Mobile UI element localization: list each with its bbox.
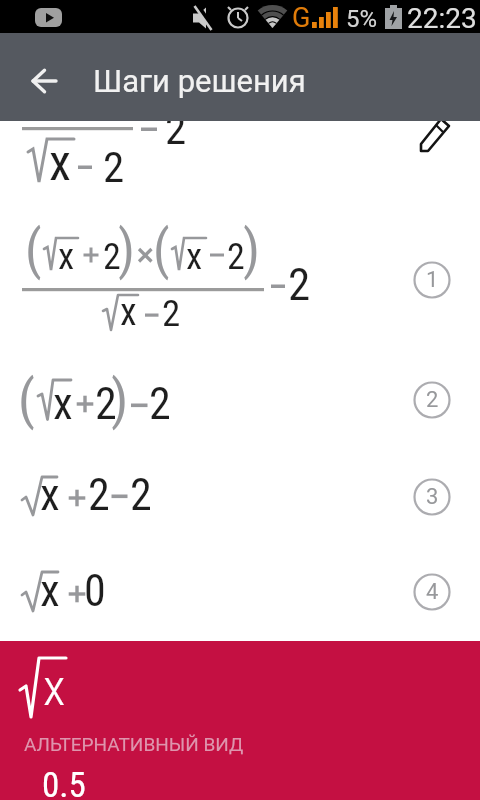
staticText: 2 [288, 258, 311, 311]
staticText: 0.5 [42, 765, 86, 800]
staticText: 3 [426, 484, 439, 510]
staticText: 2 [95, 378, 117, 430]
staticText: ( [25, 219, 42, 281]
staticText: 2 [88, 469, 110, 521]
staticText: ) [243, 219, 260, 281]
staticText: G [292, 2, 311, 34]
staticText: ( [18, 368, 35, 431]
button[interactable] [410, 570, 454, 614]
button[interactable] [408, 96, 456, 144]
button[interactable] [410, 378, 454, 422]
staticText: x [120, 290, 137, 335]
button[interactable] [16, 53, 72, 109]
button[interactable] [410, 475, 454, 519]
staticText: 2 [130, 469, 152, 521]
staticText: 22:23 [407, 2, 477, 35]
button[interactable] [0, 641, 480, 800]
staticText: x [40, 468, 60, 521]
staticText: 2 [149, 378, 171, 430]
staticText: 2 [103, 236, 121, 278]
staticText: x [186, 235, 203, 278]
staticText: Шаги решения [93, 63, 306, 99]
staticText: 5% [346, 5, 378, 33]
staticText: ) [118, 219, 135, 281]
staticText: x [58, 235, 75, 278]
staticText: ( [153, 219, 170, 281]
staticText: АЛЬТЕРНАТИВНЫЙ ВИД [24, 733, 244, 755]
staticText: 2 [103, 142, 125, 192]
staticText: ) [111, 368, 129, 431]
button[interactable] [410, 258, 454, 302]
staticText: 4 [426, 579, 439, 605]
staticText: 2 [426, 387, 439, 413]
staticText: 0 [84, 565, 106, 617]
staticText: x [43, 657, 66, 718]
staticText: x [40, 564, 60, 617]
staticText: 2 [162, 292, 181, 335]
staticText: x [53, 377, 73, 430]
staticText: 2 [227, 236, 245, 278]
staticText: 1 [426, 267, 439, 293]
staticText: 2 [165, 104, 187, 154]
staticText: x [49, 134, 71, 193]
